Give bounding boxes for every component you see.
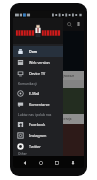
staticText: Device TV xyxy=(29,71,46,76)
staticText: Dom xyxy=(29,49,38,54)
staticText: Instagram xyxy=(29,133,47,138)
button[interactable]: Twitter xyxy=(13,141,63,152)
staticText: E-Mail xyxy=(29,91,40,96)
button[interactable]: Facebook xyxy=(13,119,63,130)
button[interactable]: Screenshot xyxy=(68,158,77,167)
staticText: Lubisz nas i polub nas xyxy=(18,113,52,117)
staticText: Other xyxy=(18,152,27,156)
button[interactable]: Recent apps xyxy=(52,158,61,167)
button[interactable]: Web version xyxy=(13,57,63,68)
button[interactable]: Search xyxy=(65,20,74,29)
button[interactable]: E-Mail xyxy=(13,88,63,99)
button[interactable]: Home xyxy=(36,158,45,167)
staticText: Web version xyxy=(29,60,50,65)
staticText: Komunikacji xyxy=(18,82,37,86)
staticText: Najnowsze xyxy=(59,74,75,78)
button[interactable]: Dom xyxy=(13,46,63,57)
button[interactable]: Instagram xyxy=(13,130,63,141)
button[interactable]: Komentarze xyxy=(13,99,63,110)
staticText: Twitter xyxy=(29,144,41,149)
button[interactable]: Device TV xyxy=(13,68,63,79)
staticText: Recenzja xyxy=(59,117,72,121)
staticText: Komentarze xyxy=(29,102,50,107)
staticText: Facebook xyxy=(29,122,46,127)
button[interactable]: Back xyxy=(20,158,29,167)
button[interactable]: Bookmarks xyxy=(74,20,83,29)
